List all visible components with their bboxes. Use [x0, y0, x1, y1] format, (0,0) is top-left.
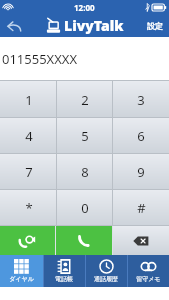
- staticText: 8: [81, 163, 89, 181]
- staticText: 留守メモ: [136, 275, 161, 283]
- button[interactable]: Call: [56, 226, 112, 255]
- staticText: 6: [137, 127, 145, 145]
- button[interactable]: Back: [0, 14, 28, 37]
- staticText: 2: [81, 91, 89, 109]
- staticText: #: [137, 199, 146, 217]
- button[interactable]: 0: [57, 190, 113, 226]
- button[interactable]: 4: [0, 118, 57, 154]
- button[interactable]: Backspace: [113, 226, 169, 255]
- button[interactable]: 2: [57, 81, 113, 118]
- button[interactable]: 011555XXXX: [0, 37, 169, 81]
- button[interactable]: 留守メモ: [127, 255, 169, 287]
- button[interactable]: 5: [57, 118, 113, 154]
- staticText: 0: [81, 199, 89, 217]
- staticText: 通話履歴: [94, 275, 118, 283]
- button[interactable]: 設定: [141, 14, 169, 37]
- staticText: LivyTalk: [64, 16, 124, 35]
- button[interactable]: 6: [113, 118, 169, 154]
- button[interactable]: #: [113, 190, 169, 226]
- staticText: 設定: [147, 21, 163, 31]
- staticText: 12:00: [74, 2, 95, 13]
- staticText: 5: [81, 127, 89, 145]
- staticText: 9: [137, 163, 145, 181]
- button[interactable]: ダイヤル: [0, 255, 43, 287]
- staticText: *: [25, 199, 33, 217]
- staticText: 4: [25, 127, 33, 145]
- staticText: 電話帳: [55, 275, 73, 283]
- staticText: ダイヤル: [9, 275, 34, 283]
- button[interactable]: 8: [57, 154, 113, 190]
- button[interactable]: 3: [113, 81, 169, 118]
- staticText: 3: [137, 91, 145, 109]
- staticText: 7: [25, 163, 33, 181]
- button[interactable]: 通話履歴: [85, 255, 127, 287]
- button[interactable]: Video call: [0, 226, 55, 255]
- staticText: 011555XXXX: [2, 50, 78, 68]
- staticText: 1: [25, 91, 33, 109]
- button[interactable]: 1: [0, 81, 57, 118]
- button[interactable]: *: [0, 190, 57, 226]
- button[interactable]: 7: [0, 154, 57, 190]
- button[interactable]: 9: [113, 154, 169, 190]
- button[interactable]: 電話帳: [43, 255, 85, 287]
